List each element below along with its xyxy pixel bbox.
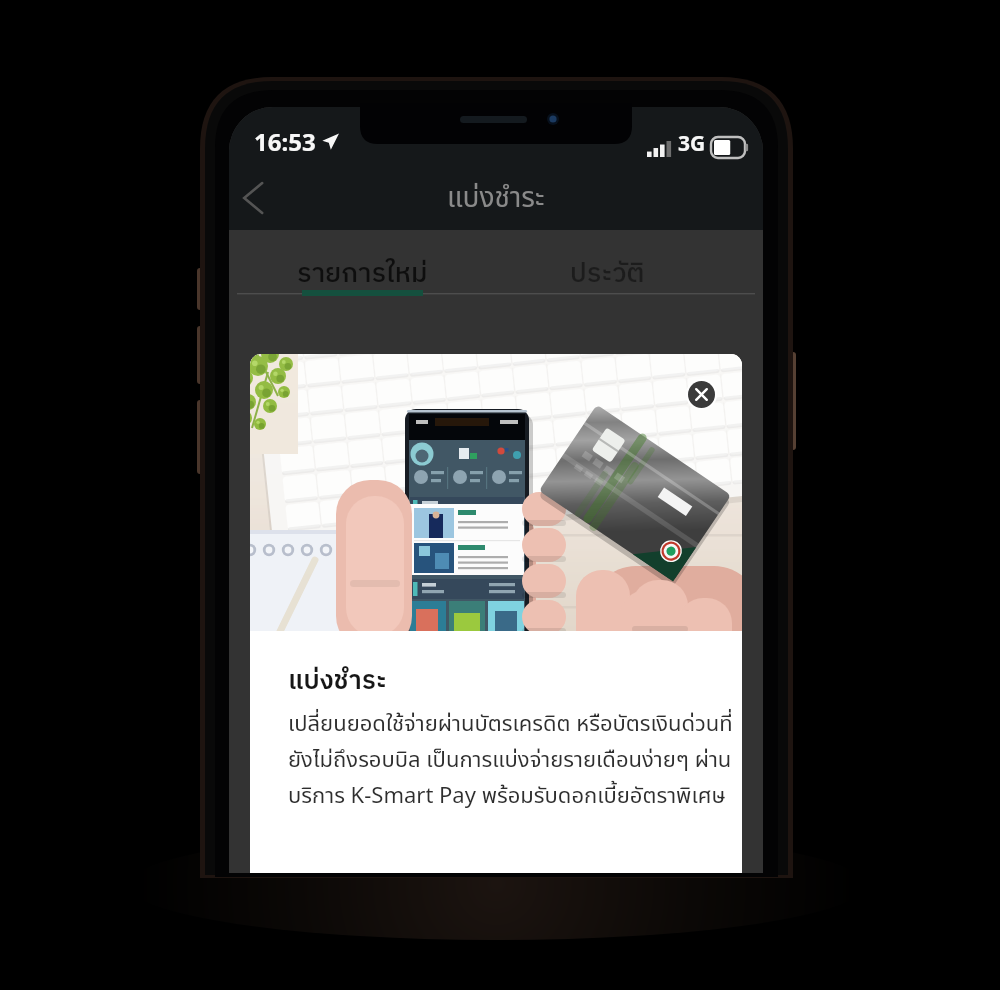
- staticText: ประวัติ: [570, 252, 645, 297]
- staticText: บริการ K-Smart Pay พร้อมรับดอกเบี้ยอัตรา…: [288, 780, 726, 813]
- button[interactable]: รายการใหม่: [229, 230, 496, 297]
- staticText: รายการใหม่: [297, 252, 428, 297]
- staticText: เปลี่ยนยอดใช้จ่ายผ่านบัตรเครดิต หรือบัตร…: [288, 708, 733, 741]
- button[interactable]: Close: [250, 354, 742, 873]
- button[interactable]: Back: [229, 174, 277, 222]
- staticText: 3G: [678, 129, 706, 158]
- staticText: แบ่งชำระ: [447, 177, 545, 219]
- button[interactable]: ประวัติ: [496, 230, 718, 297]
- staticText: ยังไม่ถึงรอบบิล เป็นการแบ่งจ่ายรายเดือนง…: [288, 744, 732, 777]
- staticText: แบ่งชำระ: [288, 660, 387, 703]
- staticText: 16:53: [254, 125, 316, 158]
- button[interactable]: Close: [686, 379, 717, 410]
